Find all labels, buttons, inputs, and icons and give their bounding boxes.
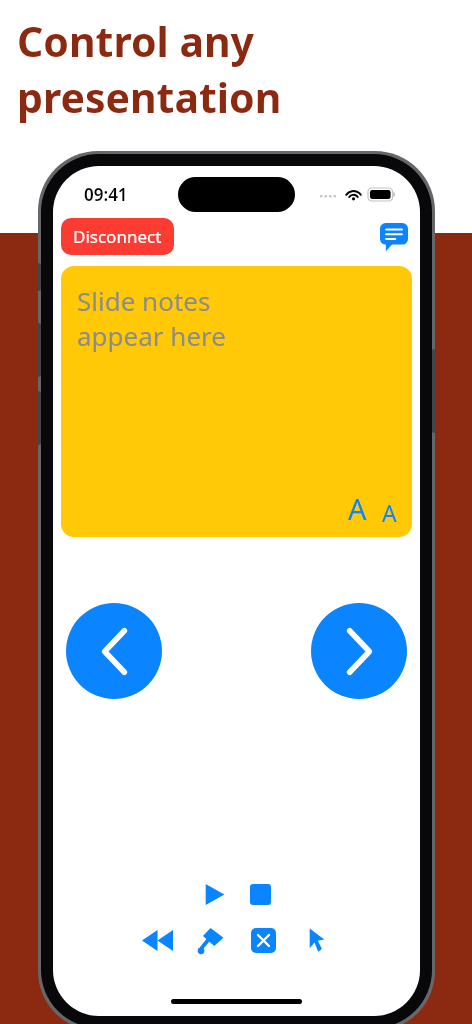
button[interactable]: Pointer (296, 920, 336, 960)
button[interactable]: Disconnect (61, 218, 174, 255)
staticText: 09:41 (84, 183, 128, 206)
staticText: A (348, 489, 367, 528)
button[interactable]: Larger text (345, 486, 370, 531)
staticText: A (382, 497, 397, 528)
button[interactable]: Rewind (137, 920, 177, 960)
button[interactable]: Messages (376, 219, 412, 255)
staticText: presentation (17, 69, 282, 125)
staticText: Control any (17, 13, 255, 69)
button[interactable]: Smaller text (379, 494, 400, 531)
staticText: Disconnect (73, 225, 162, 248)
button[interactable]: Play (197, 877, 231, 911)
button[interactable]: Slide notes (61, 266, 412, 537)
button[interactable]: Previous slide (66, 603, 162, 699)
staticText: Slide notes (77, 283, 211, 318)
button[interactable]: Stop (243, 877, 277, 911)
button[interactable]: Highlighter (190, 920, 230, 960)
button[interactable]: Next slide (311, 603, 407, 699)
staticText: appear here (77, 318, 226, 353)
button[interactable]: Blank screen (243, 920, 283, 960)
